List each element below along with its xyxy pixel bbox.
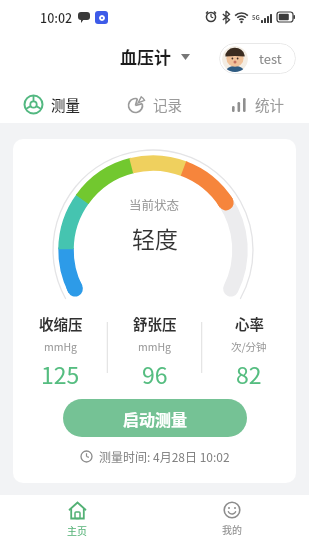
staticText: 测量时间: 4月28日 10:02 xyxy=(99,448,230,465)
button[interactable]: 主页 xyxy=(0,495,154,550)
staticText: 测量 xyxy=(51,94,80,115)
staticText: 心率 xyxy=(235,313,264,334)
staticText: mmHg xyxy=(138,339,172,354)
staticText: mmHg xyxy=(44,339,78,354)
staticText: 次/分钟 xyxy=(231,339,267,354)
staticText: 96 xyxy=(142,357,168,390)
button[interactable]: test xyxy=(219,43,296,74)
button[interactable]: 记录 xyxy=(103,78,206,123)
staticText: 收缩压 xyxy=(39,313,83,334)
staticText: 10:02 xyxy=(40,8,73,26)
staticText: 启动测量 xyxy=(123,407,188,430)
staticText: test xyxy=(259,49,282,68)
staticText: 舒张压 xyxy=(133,313,177,334)
staticText: 统计 xyxy=(255,94,284,115)
staticText: 125 xyxy=(41,357,80,390)
staticText: 我的 xyxy=(222,522,242,536)
button[interactable]: 血压计 xyxy=(120,44,190,69)
staticText: 5G xyxy=(252,13,260,22)
button[interactable]: 测量 xyxy=(0,78,103,123)
staticText: 82 xyxy=(236,357,262,390)
button[interactable]: 统计 xyxy=(206,78,309,123)
staticText: 当前状态 xyxy=(129,195,180,213)
staticText: 血压计 xyxy=(120,44,171,69)
staticText: 主页 xyxy=(67,523,87,537)
staticText: 记录 xyxy=(153,94,182,115)
button[interactable]: 启动测量 xyxy=(63,399,247,437)
staticText: 轻度 xyxy=(132,221,178,254)
button[interactable]: 我的 xyxy=(154,495,309,550)
